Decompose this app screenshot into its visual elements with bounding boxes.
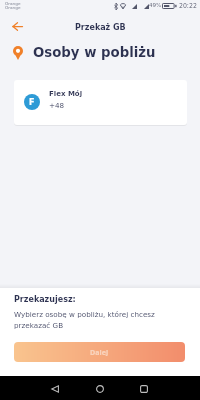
staticText: Dalej: [90, 349, 109, 356]
staticText: Orange Orange: [5, 1, 21, 10]
staticText: +48: [49, 101, 67, 109]
staticText: Przekaż GB: [75, 23, 126, 32]
staticText: Osoby w pobliżu: [33, 45, 156, 60]
button[interactable]: Back: [7, 16, 28, 37]
button[interactable]: Back: [44, 378, 66, 400]
staticText: 49%: [149, 2, 162, 9]
staticText: F: [29, 98, 35, 107]
button[interactable]: F: [14, 80, 187, 125]
button[interactable]: Home: [89, 378, 111, 400]
button[interactable]: Dalej: [14, 342, 185, 362]
staticText: 20:22: [179, 2, 197, 9]
staticText: Wybierz osobę w pobliżu, której chcesz p…: [14, 310, 155, 330]
staticText: Przekazujesz:: [14, 295, 76, 304]
button[interactable]: Recents: [133, 378, 155, 400]
staticText: Flex Mój: [49, 90, 83, 98]
